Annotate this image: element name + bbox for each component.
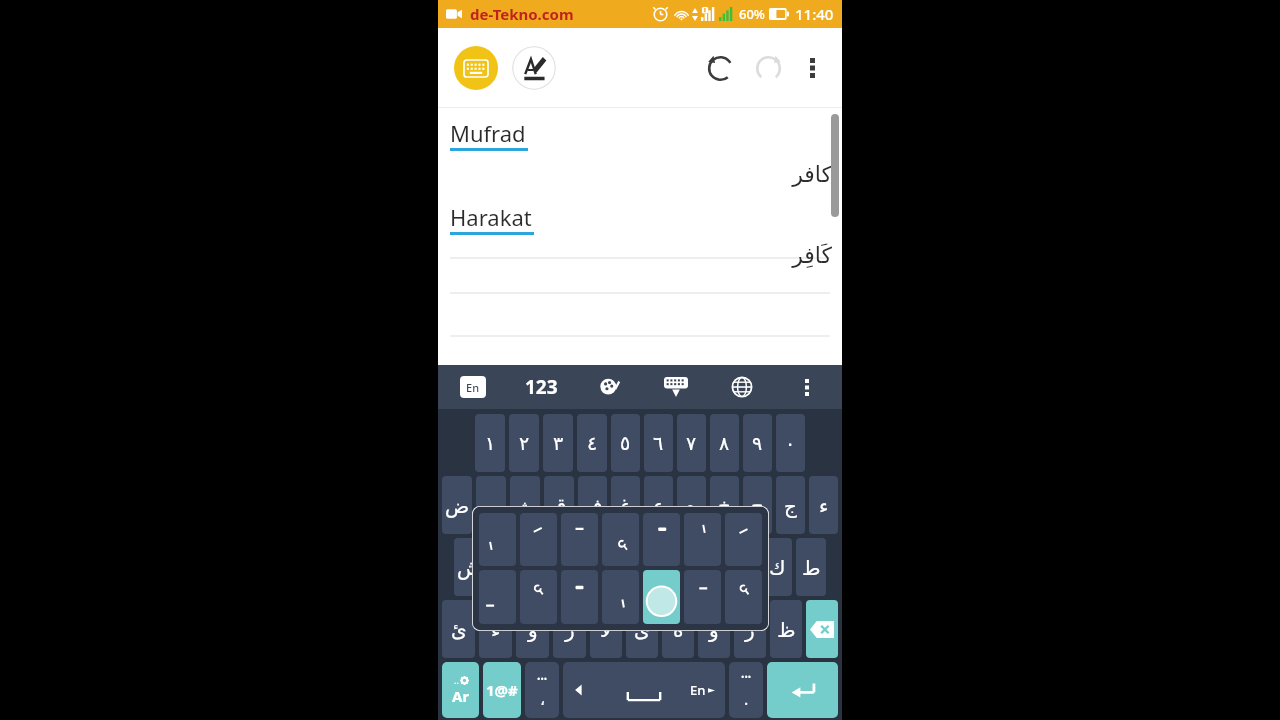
staticText: Harakat xyxy=(450,202,532,232)
button[interactable]: Diacritic xyxy=(725,570,762,624)
staticText: ٤ xyxy=(587,432,598,454)
button[interactable]: ت xyxy=(660,538,690,596)
button[interactable]: ه xyxy=(677,476,706,534)
staticText: ٣ xyxy=(553,432,564,454)
button[interactable]: ٦ xyxy=(644,414,673,472)
button[interactable]: .. xyxy=(442,662,479,718)
button[interactable]: Enter xyxy=(767,662,838,718)
button[interactable]: ش xyxy=(454,538,485,596)
button[interactable]: ٠ xyxy=(776,414,805,472)
button[interactable]: ف xyxy=(578,476,607,534)
button[interactable]: 123 xyxy=(525,374,558,400)
button[interactable]: ل xyxy=(592,538,622,596)
staticText: ء xyxy=(819,494,829,517)
button[interactable]: ٥ xyxy=(611,414,640,472)
button[interactable]: Diacritic xyxy=(561,570,598,624)
button[interactable]: خ xyxy=(710,476,739,534)
staticText: de-Tekno.com xyxy=(470,4,574,24)
button[interactable]: ء xyxy=(809,476,838,534)
button[interactable]: Backspace xyxy=(806,600,838,658)
button[interactable]: ؤ xyxy=(516,600,549,658)
staticText: ئ xyxy=(451,618,467,641)
button[interactable]: ••• xyxy=(525,662,559,718)
button[interactable]: ٤ xyxy=(577,414,607,472)
staticText: ؤ xyxy=(528,618,538,641)
button[interactable]: ة xyxy=(662,600,694,658)
button[interactable]: Keyboard xyxy=(454,46,498,90)
staticText: ••• xyxy=(741,670,752,682)
button[interactable]: More xyxy=(794,374,820,400)
staticText: ٩ xyxy=(752,432,763,454)
staticText: ص xyxy=(479,494,504,517)
button[interactable]: Diacritic xyxy=(561,513,598,566)
button[interactable]: Diacritic xyxy=(684,513,721,566)
button[interactable]: ر xyxy=(553,600,586,658)
button[interactable]: ٩ xyxy=(743,414,772,472)
button[interactable]: Undo xyxy=(700,48,740,88)
button[interactable]: ص xyxy=(476,476,506,534)
button[interactable]: ي xyxy=(524,538,554,596)
button[interactable]: ط xyxy=(796,538,826,596)
button[interactable]: More options xyxy=(794,50,830,86)
button[interactable]: ا xyxy=(626,538,656,596)
button[interactable]: ئ xyxy=(442,600,475,658)
button[interactable]: ٨ xyxy=(710,414,739,472)
button[interactable]: ض xyxy=(442,476,472,534)
button[interactable]: ج xyxy=(776,476,805,534)
staticText: ف xyxy=(582,494,603,517)
button[interactable]: ••• xyxy=(729,662,763,718)
button[interactable]: Hide keyboard xyxy=(662,373,690,401)
button[interactable]: En xyxy=(460,376,486,398)
button[interactable]: ٢ xyxy=(509,414,539,472)
button[interactable]: غ xyxy=(611,476,640,534)
button[interactable]: Diacritic xyxy=(602,570,639,624)
button[interactable]: Diacritic xyxy=(479,513,516,566)
staticText: Mufrad xyxy=(450,118,526,148)
button[interactable]: ث xyxy=(510,476,540,534)
button[interactable]: م xyxy=(728,538,758,596)
button[interactable]: ء xyxy=(479,600,512,658)
staticText: ي xyxy=(531,556,547,579)
button[interactable]: Diacritic xyxy=(479,570,516,624)
button[interactable]: Space xyxy=(563,662,725,718)
button[interactable]: ح xyxy=(743,476,772,534)
button[interactable]: Diacritic xyxy=(725,513,762,566)
staticText: ج xyxy=(784,494,797,517)
staticText: س xyxy=(492,556,517,579)
staticText: ك xyxy=(769,556,786,579)
button[interactable]: ق xyxy=(544,476,574,534)
button[interactable]: Diacritic xyxy=(602,513,639,566)
button[interactable]: لا xyxy=(590,600,622,658)
staticText: خ xyxy=(718,494,731,517)
button[interactable]: Diacritic xyxy=(520,570,557,624)
button[interactable]: ك xyxy=(762,538,792,596)
button[interactable]: Language xyxy=(728,373,756,401)
button[interactable]: Diacritic xyxy=(643,570,680,624)
button[interactable]: ظ xyxy=(770,600,802,658)
button[interactable]: ن xyxy=(694,538,724,596)
button[interactable]: Diacritic xyxy=(684,570,721,624)
button[interactable]: ى xyxy=(626,600,658,658)
staticText: ن xyxy=(702,556,717,579)
staticText: ت xyxy=(666,556,685,579)
button[interactable]: Theme xyxy=(596,373,624,401)
button[interactable]: Redo xyxy=(748,48,788,88)
button[interactable]: Diacritic xyxy=(643,513,680,566)
button[interactable]: ٧ xyxy=(677,414,706,472)
button[interactable]: ز xyxy=(734,600,766,658)
staticText: .. xyxy=(454,674,459,686)
staticText: ر xyxy=(565,618,575,641)
staticText: ط xyxy=(802,556,821,579)
staticText: ح xyxy=(751,494,764,517)
staticText: لا xyxy=(600,618,612,641)
staticText: و xyxy=(709,618,719,641)
button[interactable]: ب xyxy=(558,538,588,596)
button[interactable]: Diacritic xyxy=(520,513,557,566)
button[interactable]: ع xyxy=(644,476,673,534)
button[interactable]: Handwriting xyxy=(512,46,556,90)
button[interactable]: و xyxy=(698,600,730,658)
button[interactable]: س xyxy=(489,538,520,596)
button[interactable]: ٣ xyxy=(543,414,573,472)
button[interactable]: 1@# xyxy=(483,662,521,718)
button[interactable]: ١ xyxy=(475,414,505,472)
